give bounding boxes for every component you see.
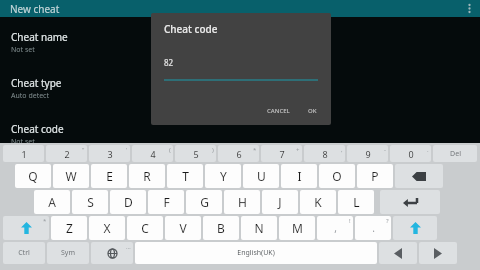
button[interactable]: key	[395, 164, 443, 188]
staticText: New cheat	[10, 2, 60, 16]
button[interactable]: H	[224, 190, 260, 214]
button[interactable]: 5	[175, 145, 216, 162]
button[interactable]: More options	[458, 0, 480, 17]
button[interactable]: X	[89, 216, 125, 240]
button[interactable]: 1	[3, 145, 44, 162]
button[interactable]: Z	[51, 216, 87, 240]
staticText: H	[238, 194, 247, 210]
button[interactable]: F	[148, 190, 184, 214]
staticText: E	[106, 168, 113, 184]
button[interactable]: Q	[15, 164, 51, 188]
button[interactable]: key	[380, 190, 440, 214]
button[interactable]: G	[186, 190, 222, 214]
staticText: (	[169, 146, 171, 154]
staticText: U	[257, 168, 266, 184]
button[interactable]: key	[393, 216, 437, 240]
button[interactable]: 8	[304, 145, 345, 162]
button[interactable]: E	[91, 164, 127, 188]
button[interactable]: Sym	[47, 242, 89, 264]
button[interactable]: V	[165, 216, 201, 240]
button[interactable]: 6	[218, 145, 259, 162]
button[interactable]: A	[34, 190, 70, 214]
staticText: 2	[64, 148, 70, 160]
button[interactable]: Cheat name	[0, 24, 480, 61]
staticText: Y	[220, 168, 227, 184]
staticText: J	[278, 194, 282, 210]
staticText: +	[296, 146, 300, 154]
button[interactable]: T	[167, 164, 203, 188]
staticText: 1	[21, 148, 27, 160]
staticText: 6	[236, 148, 242, 160]
staticText: 4	[150, 148, 156, 160]
staticText: ,	[334, 221, 337, 235]
staticText: G	[200, 194, 209, 210]
staticText: .	[427, 146, 429, 154]
staticText: X	[103, 220, 111, 236]
staticText: ,	[341, 146, 343, 154]
staticText: 82	[164, 57, 174, 68]
button[interactable]: 7	[261, 145, 302, 162]
button[interactable]: .	[355, 216, 391, 240]
staticText: M	[292, 220, 303, 236]
button[interactable]: 9	[347, 145, 388, 162]
button[interactable]: N	[241, 216, 277, 240]
button[interactable]: Y	[205, 164, 241, 188]
staticText: )	[212, 146, 214, 154]
staticText: C	[141, 220, 149, 236]
button[interactable]: J	[262, 190, 298, 214]
staticText: A	[48, 194, 56, 210]
staticText: N	[254, 220, 264, 236]
button[interactable]: M	[279, 216, 315, 240]
button[interactable]: U	[243, 164, 279, 188]
button[interactable]: 4	[132, 145, 173, 162]
button[interactable]: key	[3, 216, 49, 240]
button[interactable]: L	[338, 190, 374, 214]
staticText: W	[65, 168, 77, 184]
staticText: 3	[107, 148, 113, 160]
button[interactable]: 82	[164, 57, 318, 81]
button[interactable]: OK	[302, 103, 323, 119]
button[interactable]: 3	[89, 145, 130, 162]
button[interactable]: R	[129, 164, 165, 188]
staticText: 9	[365, 148, 371, 160]
staticText: V	[179, 220, 187, 236]
staticText: T	[182, 168, 189, 184]
button[interactable]: Cheat code	[0, 116, 480, 153]
staticText: Cheat type	[11, 76, 62, 90]
button[interactable]: C	[127, 216, 163, 240]
staticText: O	[332, 168, 342, 184]
button[interactable]: W	[53, 164, 89, 188]
staticText: ?	[386, 217, 389, 225]
staticText: !	[349, 217, 351, 225]
button[interactable]: Ctrl	[3, 242, 45, 264]
staticText: R	[143, 168, 151, 184]
button[interactable]: S	[72, 190, 108, 214]
button[interactable]: B	[203, 216, 239, 240]
staticText: Del	[450, 149, 461, 159]
button[interactable]: English(UK)	[135, 242, 377, 264]
staticText: Not set	[11, 45, 35, 55]
staticText: F	[163, 194, 170, 210]
staticText: *	[253, 146, 257, 154]
staticText: Cheat name	[11, 30, 68, 44]
button[interactable]: I	[281, 164, 317, 188]
staticText: Auto detect	[11, 91, 49, 101]
button[interactable]: K	[300, 190, 336, 214]
button[interactable]: ,	[317, 216, 353, 240]
button[interactable]: D	[110, 190, 146, 214]
button[interactable]: CANCEL	[261, 103, 296, 119]
button[interactable]: Del	[433, 145, 477, 162]
button[interactable]: key	[379, 242, 417, 264]
button[interactable]: 0	[390, 145, 431, 162]
button[interactable]: key	[91, 242, 133, 264]
button[interactable]: key	[419, 242, 457, 264]
staticText: 5	[193, 148, 199, 160]
staticText: *	[43, 217, 47, 225]
staticText: B	[217, 220, 225, 236]
button[interactable]: P	[357, 164, 393, 188]
button[interactable]: O	[319, 164, 355, 188]
staticText: S	[87, 194, 94, 210]
staticText: Cheat code	[164, 22, 218, 36]
button[interactable]: 2	[46, 145, 87, 162]
button[interactable]: Cheat type	[0, 70, 480, 107]
